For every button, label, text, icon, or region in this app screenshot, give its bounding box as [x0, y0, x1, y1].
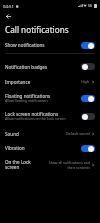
button[interactable]: Lock screen notifications	[0, 107, 100, 126]
staticText: Sound	[5, 131, 19, 137]
button[interactable]: On the Lock screen	[0, 155, 100, 175]
button[interactable]: On	[81, 145, 95, 152]
button[interactable]: Back	[4, 12, 13, 21]
staticText: High	[81, 79, 90, 84]
staticText: 56	[88, 3, 93, 8]
staticText: Call notifications	[5, 24, 69, 35]
staticText: Floating notifications	[5, 93, 51, 99]
staticText: 04:51	[3, 3, 14, 9]
staticText: Allow floating notifications	[5, 98, 48, 103]
button[interactable]: Sound	[0, 126, 100, 141]
staticText: Importance	[5, 79, 31, 85]
staticText: Vibration	[5, 145, 25, 151]
staticText: Show notifications	[5, 42, 45, 48]
button[interactable]: Off	[81, 63, 95, 70]
staticText: Notification badges	[5, 64, 48, 70]
staticText: Default sound	[66, 131, 90, 136]
staticText: On the Lock screen	[5, 159, 48, 171]
staticText: Show all notifications and their content…	[48, 160, 90, 170]
staticText: Allow notifications on the Lock screen	[5, 116, 66, 121]
button[interactable]: Show notifications	[0, 37, 100, 53]
button[interactable]: On	[81, 42, 95, 49]
button[interactable]: Floating notifications	[0, 89, 100, 107]
button[interactable]: Off	[81, 113, 95, 120]
staticText: Lock screen notifications	[5, 111, 59, 117]
button[interactable]: Notification badges	[0, 59, 100, 74]
button[interactable]: Importance	[0, 74, 100, 89]
button[interactable]: On	[81, 95, 95, 102]
button[interactable]: Vibration	[0, 141, 100, 155]
